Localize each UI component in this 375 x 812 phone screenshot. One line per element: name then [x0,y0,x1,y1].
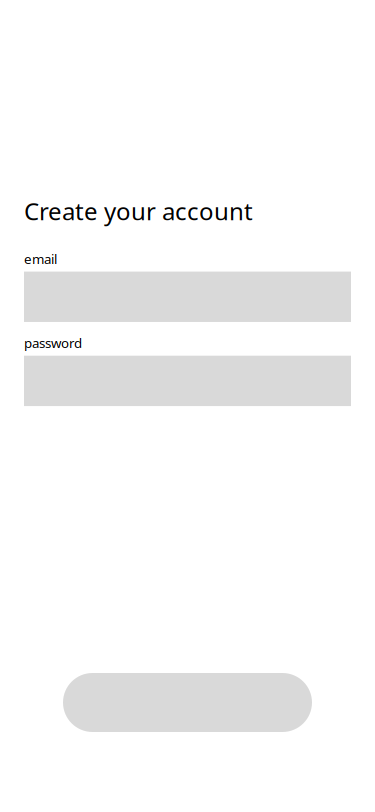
staticText: email [24,250,57,268]
button[interactable]: Create account [63,673,312,732]
staticText: password [24,334,82,352]
staticText: Create your account [24,195,253,227]
